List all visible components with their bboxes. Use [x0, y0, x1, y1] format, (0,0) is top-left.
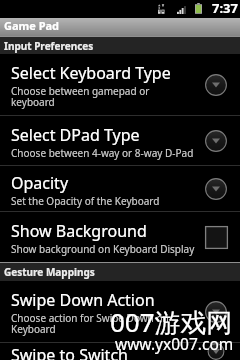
staticText: 7:37 — [212, 0, 238, 17]
staticText: www.yx007.com — [115, 333, 234, 354]
staticText: Input Preferences — [4, 39, 94, 53]
button[interactable]: Open options — [205, 301, 227, 323]
button[interactable]: Open options — [205, 74, 227, 96]
staticText: Choose between gamepad or keyboard — [11, 84, 150, 109]
button[interactable]: Show Background checkbox — [205, 226, 228, 249]
staticText: Choose action for Swipe Down on Keyboard — [11, 311, 169, 336]
staticText: Opacity — [11, 172, 69, 194]
staticText: 007游戏网 — [110, 304, 233, 340]
button[interactable]: Swipe to Switch — [0, 343, 240, 360]
button[interactable]: Open options — [205, 343, 227, 360]
button[interactable]: Select Keyboard Type — [0, 54, 240, 115]
button[interactable]: Swipe Down Action — [0, 281, 240, 342]
button[interactable]: Open options — [205, 178, 227, 200]
staticText: Set the Opacity of the Keyboard — [11, 194, 160, 208]
button[interactable]: Opacity — [0, 166, 240, 211]
button[interactable]: Show Background — [0, 212, 240, 262]
button[interactable]: Open options — [205, 130, 227, 152]
staticText: Gesture Mappings — [4, 265, 95, 279]
staticText: Select DPad Type — [11, 124, 140, 146]
staticText: Select Keyboard Type — [11, 62, 171, 84]
staticText: Choose between 4-way or 8-way D-Pad — [11, 146, 194, 160]
staticText: Game Pad — [4, 18, 60, 33]
staticText: Swipe to Switch — [11, 344, 128, 360]
button[interactable]: Select DPad Type — [0, 116, 240, 165]
staticText: Show background on Keyboard Display — [11, 242, 195, 256]
staticText: Show Background — [11, 220, 147, 242]
staticText: Swipe Down Action — [11, 289, 155, 311]
